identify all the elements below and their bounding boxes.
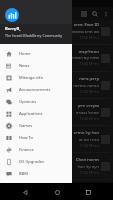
button[interactable]: Mitzuga info [0,71,72,83]
button[interactable]: OS Upgrades [0,155,72,167]
staticText: ישראל נבחרה [3,110,99,115]
staticText: Opinions [19,99,37,104]
button[interactable]: Games [0,119,72,131]
staticText: Mitzuga info [19,75,43,80]
staticText: The Israeli BlackBerry Community [5,33,63,38]
button[interactable]: Tab [79,9,88,18]
staticText: דעה על הכל [3,164,99,169]
button[interactable]: Opinions [0,95,72,107]
staticText: OS Upgrades [19,159,44,164]
staticText: הכירו את זה [3,137,99,142]
button[interactable]: סקירה: ירוק [0,101,113,128]
button[interactable]: How To [0,131,72,143]
button[interactable]: BBM [0,167,72,179]
button[interactable]: עדכון גרסה [0,74,113,101]
staticText: חדש: Face ID [3,22,99,28]
staticText: הכל על החדש [3,130,99,136]
button[interactable]: Search [90,9,99,18]
button[interactable]: Announcements [0,83,72,95]
button[interactable]: Back [19,186,31,198]
staticText: 11:32 18 ביולי [3,90,99,94]
staticText: 11:32 18 ביולי [3,144,99,148]
staticText: 11:32 18 ביולי [3,171,99,175]
button[interactable]: האפליקציה [0,47,113,74]
staticText: BBM [19,171,28,176]
staticText: Chen חדשות [3,157,99,163]
button[interactable]: חדש: Face ID [0,20,113,47]
button[interactable]: הכל על החדש [0,128,113,155]
staticText: BerryB, [5,26,21,32]
staticText: Home [19,51,31,56]
staticText: Applications [19,111,43,116]
staticText: Finance [19,147,34,152]
staticText: 11:32 18 ביולי [3,117,99,121]
staticText: מה חדש במכשיר [3,29,99,34]
button[interactable]: News [0,59,72,71]
staticText: הגרסה החדשה [3,83,99,88]
button[interactable]: Applications [0,107,72,119]
button[interactable]: Recent apps [82,186,94,198]
button[interactable]: BerryB, [0,0,72,44]
button[interactable]: Finance [0,143,72,155]
button[interactable]: Home [0,47,72,59]
staticText: 11:32 18 ביולי [3,62,99,66]
button[interactable]: More options [101,9,110,18]
staticText: 11:32 18 ביולי [3,36,99,40]
staticText: Games [19,123,33,128]
staticText: עדכון גרסה [3,76,99,82]
staticText: שיחה עם המפתח [3,55,99,60]
staticText: How To [19,135,34,140]
staticText: סקירה: ירוק [3,103,99,109]
staticText: Announcements [19,87,51,92]
button[interactable]: Chen חדשות [0,155,113,182]
staticText: האפליקציה [3,49,99,54]
button[interactable]: Home [51,186,63,198]
staticText: News [19,63,30,68]
